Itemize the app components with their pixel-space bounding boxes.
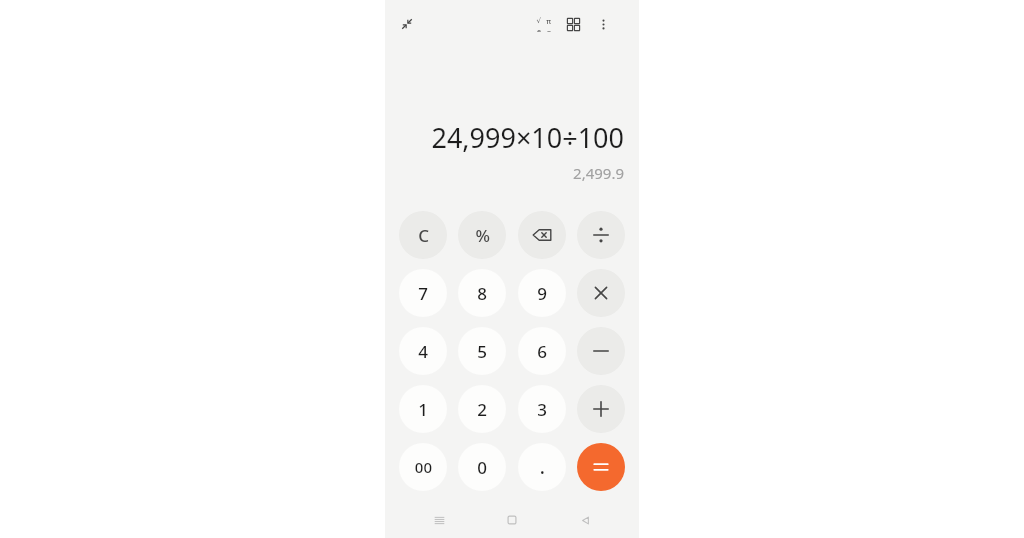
staticText: e — [536, 27, 541, 32]
button[interactable]: Divide — [577, 211, 625, 259]
button[interactable]: Backspace — [518, 211, 566, 259]
button[interactable]: Minus — [577, 327, 625, 375]
staticText: √ — [536, 17, 541, 25]
button[interactable]: Scientific calculator — [530, 11, 556, 37]
button[interactable]: Home — [498, 506, 526, 534]
button[interactable]: 7 — [399, 269, 447, 317]
staticText: 4 — [418, 340, 428, 363]
button[interactable]: Collapse — [394, 11, 420, 37]
staticText: 3 — [537, 398, 547, 421]
button[interactable]: Multiply — [577, 269, 625, 317]
button[interactable]: 1 — [399, 385, 447, 433]
button[interactable]: 5 — [458, 327, 506, 375]
staticText: 00 — [414, 457, 432, 477]
staticText: 0 — [477, 456, 487, 479]
button[interactable]: 2 — [458, 385, 506, 433]
button[interactable]: Back — [571, 506, 599, 534]
button[interactable]: 8 — [458, 269, 506, 317]
button[interactable]: Recents — [425, 506, 453, 534]
staticText: 9 — [537, 282, 547, 305]
staticText: 7 — [418, 282, 428, 305]
staticText: . — [539, 454, 545, 480]
staticText: C — [418, 224, 429, 247]
button[interactable]: % — [458, 211, 506, 259]
button[interactable]: . — [518, 443, 566, 491]
staticText: 8 — [477, 282, 487, 305]
button[interactable]: C — [399, 211, 447, 259]
button[interactable]: 4 — [399, 327, 447, 375]
button[interactable]: 3 — [518, 385, 566, 433]
staticText: 6 — [537, 340, 547, 363]
staticText: π — [546, 17, 551, 27]
staticText: 1 — [418, 398, 428, 421]
button[interactable]: Equals — [577, 443, 625, 491]
staticText: % — [475, 224, 490, 247]
staticText: 2,499.9 — [573, 163, 624, 183]
button[interactable]: 0 — [458, 443, 506, 491]
button[interactable]: Unit converter — [560, 11, 586, 37]
staticText: = — [546, 27, 551, 32]
staticText: 2 — [477, 398, 487, 421]
button[interactable]: 6 — [518, 327, 566, 375]
button[interactable]: Plus — [577, 385, 625, 433]
staticText: 5 — [477, 340, 487, 363]
button[interactable]: 00 — [399, 443, 447, 491]
button[interactable]: 9 — [518, 269, 566, 317]
button[interactable]: More options — [590, 11, 616, 37]
staticText: 24,999×10÷100 — [431, 119, 624, 156]
